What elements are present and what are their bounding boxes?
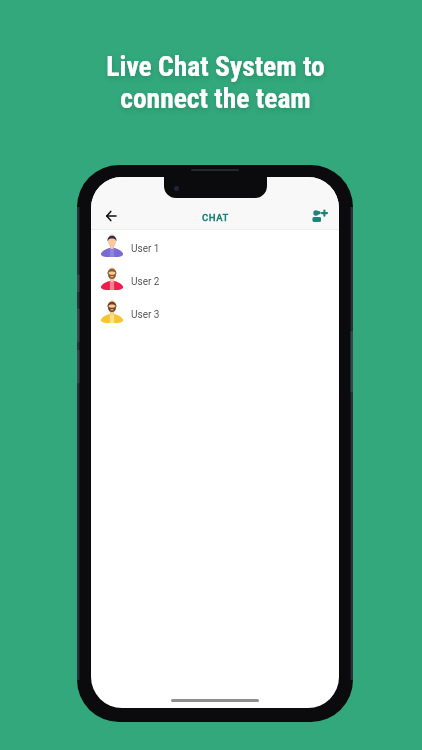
button[interactable]: Back xyxy=(100,205,122,227)
staticText: User 2 xyxy=(131,276,160,288)
button[interactable]: User 3 xyxy=(91,294,339,327)
staticText: User 1 xyxy=(131,243,160,255)
staticText: User 3 xyxy=(131,309,160,321)
staticText: CHAT xyxy=(202,212,229,223)
button[interactable]: User 1 xyxy=(91,228,339,261)
staticText: Live Chat System to xyxy=(106,50,325,82)
button[interactable]: User 2 xyxy=(91,261,339,294)
staticText: connect the team xyxy=(120,82,311,114)
button[interactable]: Add person xyxy=(308,205,330,227)
